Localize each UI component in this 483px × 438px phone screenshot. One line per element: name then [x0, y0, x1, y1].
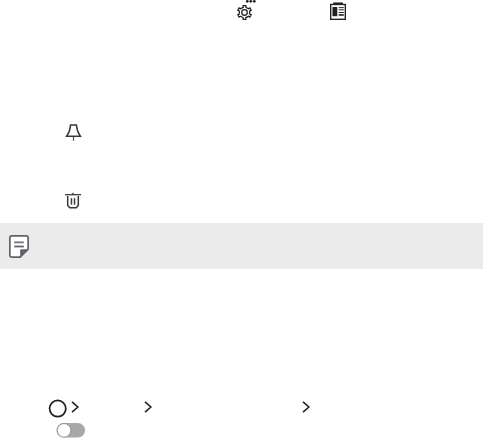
- button[interactable]: Open: [290, 393, 320, 419]
- button[interactable]: Toggle: [0, 418, 483, 437]
- button[interactable]: Open: [132, 393, 162, 419]
- button[interactable]: [0, 176, 483, 224]
- button[interactable]: Select: [0, 393, 483, 425]
- button[interactable]: [0, 108, 483, 156]
- button[interactable]: Select: [45, 397, 69, 421]
- button[interactable]: Toggle: [54, 419, 88, 436]
- button[interactable]: Article view: [325, 0, 351, 24]
- button[interactable]: More options: [240, 0, 264, 12]
- button[interactable]: Settings: [231, 0, 257, 25]
- button[interactable]: [0, 223, 483, 269]
